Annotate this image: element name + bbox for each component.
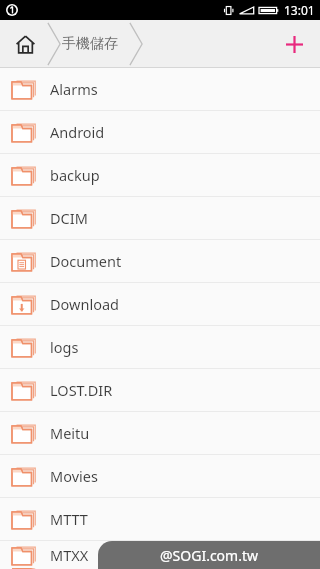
button[interactable]: DCIM [0, 197, 320, 240]
staticText: Movies [50, 466, 98, 486]
staticText: 手機儲存 [62, 35, 118, 53]
button[interactable]: Home [8, 27, 42, 61]
button[interactable]: logs [0, 326, 320, 369]
staticText: Meitu [50, 423, 90, 443]
staticText: 13:01 [284, 2, 315, 18]
button[interactable]: Alarms [0, 68, 320, 111]
button[interactable]: backup [0, 154, 320, 197]
button[interactable]: Meitu [0, 412, 320, 455]
staticText: Alarms [50, 79, 98, 99]
button[interactable]: Document [0, 240, 320, 283]
button[interactable]: Download [0, 283, 320, 326]
button[interactable]: LOST.DIR [0, 369, 320, 412]
staticText: backup [50, 165, 100, 185]
button[interactable]: Movies [0, 455, 320, 498]
button[interactable]: MTXX [0, 541, 320, 569]
button[interactable]: MTTT [0, 498, 320, 541]
staticText: logs [50, 337, 79, 357]
staticText: MTXX [50, 545, 89, 565]
staticText: LOST.DIR [50, 380, 113, 400]
staticText: DCIM [50, 208, 88, 228]
staticText: @SOGI.com.tw [160, 546, 258, 565]
staticText: Download [50, 294, 119, 314]
staticText: Android [50, 122, 105, 142]
button[interactable]: Add [276, 26, 312, 62]
button[interactable]: 手機儲存 [62, 22, 118, 66]
staticText: MTTT [50, 509, 88, 529]
staticText: Document [50, 251, 122, 271]
button[interactable]: Android [0, 111, 320, 154]
